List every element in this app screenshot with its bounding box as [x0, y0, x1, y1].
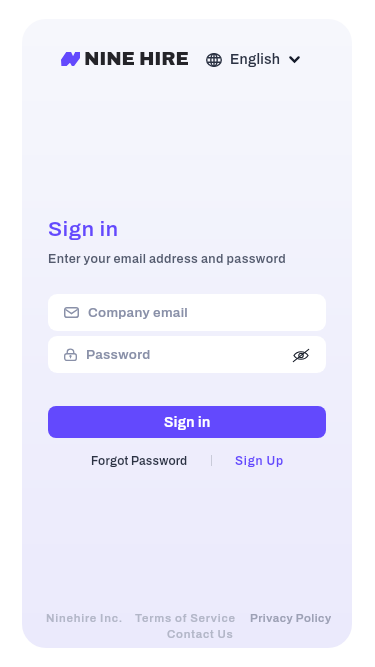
button[interactable]: Sign in	[48, 406, 326, 438]
button[interactable]: Password	[48, 336, 326, 373]
button[interactable]: Company email	[48, 294, 326, 331]
button[interactable]: Forgot Password	[91, 454, 188, 467]
staticText: Company email	[88, 305, 189, 320]
button[interactable]: Contact Us	[167, 628, 234, 641]
button[interactable]: Show password	[289, 343, 313, 367]
staticText: Password	[86, 347, 151, 362]
staticText: NINE	[84, 49, 135, 69]
button[interactable]: Ninehire Inc.	[46, 612, 123, 625]
button[interactable]: Terms of Service	[135, 612, 236, 625]
staticText: Sign in	[48, 218, 119, 241]
button[interactable]: Privacy Policy	[250, 612, 332, 625]
staticText: HIRE	[139, 49, 189, 69]
staticText: English	[230, 52, 281, 67]
staticText: Enter your email address and password	[48, 252, 287, 266]
staticText: Sign in	[164, 415, 211, 430]
button[interactable]: English	[206, 50, 300, 69]
button[interactable]: Sign Up	[235, 454, 284, 467]
